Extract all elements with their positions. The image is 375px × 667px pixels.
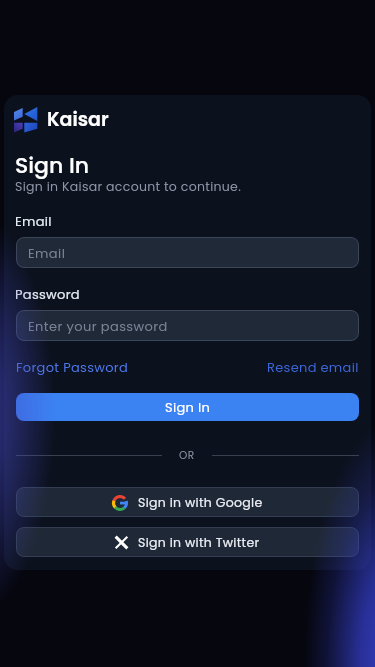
staticText: OR [179, 448, 195, 463]
button[interactable]: Sign In [16, 393, 359, 421]
button[interactable]: Sign in with Google [16, 487, 359, 517]
button[interactable]: Enter your password [16, 310, 359, 341]
button[interactable]: Forgot Password [16, 358, 129, 376]
button[interactable]: Kaisar [14, 106, 109, 133]
staticText: Email [15, 212, 52, 230]
staticText: Password [15, 285, 80, 303]
staticText: Kaisar [47, 106, 109, 133]
staticText: Sign In [15, 150, 90, 181]
button[interactable]: Sign in with Twitter [16, 527, 359, 557]
button[interactable]: Email [16, 237, 359, 268]
staticText: Sign in with Twitter [138, 534, 260, 551]
staticText: Sign in Kaisar account to continue. [15, 178, 242, 195]
staticText: Sign in with Google [138, 494, 263, 511]
staticText: Enter your password [28, 317, 168, 335]
button[interactable]: Resend email [267, 358, 359, 376]
staticText: Email [28, 244, 66, 262]
staticText: Sign In [165, 398, 211, 416]
